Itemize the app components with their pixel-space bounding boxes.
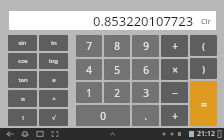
staticText: 9 — [143, 39, 149, 53]
button[interactable]: π — [8, 90, 37, 107]
button[interactable]: tan — [8, 71, 37, 88]
staticText: 0 — [100, 109, 106, 123]
staticText: cos — [18, 57, 28, 65]
button[interactable]: Recent apps — [34, 128, 46, 140]
button[interactable]: ) — [190, 58, 217, 79]
button[interactable]: Home — [19, 128, 31, 140]
staticText: 5 — [114, 63, 120, 77]
staticText: ) — [202, 63, 205, 75]
staticText: 1 — [86, 86, 92, 100]
staticText: ^ — [52, 95, 56, 103]
staticText: √ — [52, 114, 56, 121]
button[interactable]: Clr — [201, 11, 211, 30]
staticText: π — [21, 95, 25, 103]
staticText: − — [172, 86, 178, 100]
button[interactable]: 6 — [132, 59, 159, 80]
staticText: tan — [18, 76, 28, 84]
button[interactable]: . — [132, 105, 159, 126]
button[interactable]: 7 — [76, 35, 102, 57]
staticText: 0.853220107723 — [93, 12, 194, 30]
staticText: 3 — [143, 86, 149, 100]
button[interactable]: cos — [8, 53, 37, 69]
button[interactable]: 3 — [132, 82, 159, 103]
button[interactable]: 2 — [104, 82, 130, 103]
button[interactable]: = — [190, 81, 217, 126]
staticText: . — [144, 109, 147, 123]
staticText: sin — [18, 39, 27, 47]
button[interactable]: log — [39, 53, 68, 69]
button[interactable]: 0 — [76, 105, 130, 126]
button[interactable]: 1 — [76, 82, 102, 103]
button[interactable]: ln — [39, 35, 68, 51]
staticText: ( — [202, 40, 205, 52]
staticText: log — [49, 57, 58, 65]
staticText: 21:12 — [197, 129, 215, 139]
button[interactable]: − — [161, 82, 188, 103]
button[interactable]: + — [161, 105, 188, 126]
staticText: + — [172, 109, 178, 123]
button[interactable]: Full screen — [49, 128, 61, 140]
staticText: 8 — [114, 39, 120, 53]
button[interactable]: 8 — [104, 35, 130, 57]
staticText: Clr — [201, 16, 211, 26]
staticText: × — [172, 63, 178, 77]
button[interactable]: √ — [39, 109, 68, 126]
staticText: + — [172, 39, 178, 53]
button[interactable]: Back — [4, 128, 16, 140]
staticText: 4 — [86, 63, 92, 77]
staticText: ln — [51, 39, 57, 47]
button[interactable]: ( — [190, 35, 217, 56]
staticText: = — [201, 97, 207, 111]
staticText: e — [52, 76, 56, 84]
button[interactable]: sin — [8, 35, 37, 51]
staticText: 2 — [114, 86, 120, 100]
button[interactable]: e — [39, 71, 68, 88]
staticText: ! — [22, 114, 24, 122]
staticText: 6 — [143, 63, 149, 77]
button[interactable]: 0.853220107723 — [9, 11, 216, 30]
button[interactable]: 5 — [104, 59, 130, 80]
button[interactable]: 4 — [76, 59, 102, 80]
button[interactable]: + — [161, 35, 188, 57]
button[interactable]: × — [161, 59, 188, 80]
staticText: 7 — [86, 39, 92, 53]
button[interactable]: ^ — [39, 90, 68, 107]
button[interactable]: 9 — [132, 35, 159, 57]
button[interactable]: ! — [8, 109, 37, 126]
